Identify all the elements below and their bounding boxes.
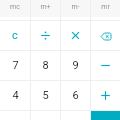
staticText: m+ bbox=[40, 3, 51, 11]
staticText: mc bbox=[10, 3, 20, 11]
staticText: 5 bbox=[42, 89, 49, 102]
button[interactable]: Multiply bbox=[61, 21, 90, 50]
button[interactable]: mr bbox=[91, 0, 120, 17]
staticText: c bbox=[12, 29, 18, 42]
button[interactable]: Backspace bbox=[91, 21, 120, 50]
button[interactable]: Divide bbox=[31, 21, 60, 50]
button[interactable]: m- bbox=[61, 0, 90, 17]
staticText: 8 bbox=[42, 59, 49, 72]
button[interactable]: m+ bbox=[31, 0, 60, 17]
button[interactable]: 7 bbox=[0, 51, 30, 80]
button[interactable]: Plus bbox=[91, 81, 120, 110]
staticText: mr bbox=[101, 3, 110, 11]
button[interactable]: 8 bbox=[31, 51, 60, 80]
button[interactable]: mc bbox=[0, 0, 30, 17]
staticText: m- bbox=[71, 3, 80, 11]
button[interactable]: 5 bbox=[31, 81, 60, 110]
staticText: 6 bbox=[72, 89, 79, 102]
staticText: 9 bbox=[72, 59, 79, 72]
button[interactable]: c bbox=[0, 21, 30, 50]
button[interactable]: 6 bbox=[61, 81, 90, 110]
button[interactable]: 9 bbox=[61, 51, 90, 80]
button[interactable]: Minus bbox=[91, 51, 120, 80]
staticText: 4 bbox=[12, 89, 19, 102]
button[interactable]: 4 bbox=[0, 81, 30, 110]
staticText: 7 bbox=[12, 59, 19, 72]
